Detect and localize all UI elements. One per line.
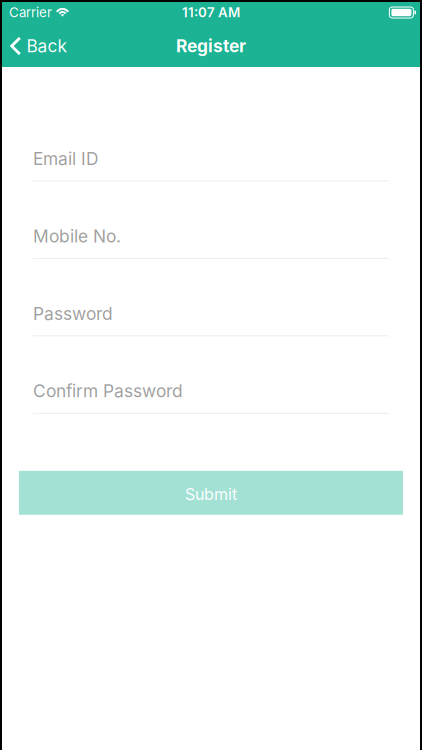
staticText: Email ID — [33, 148, 99, 169]
staticText: Password — [33, 303, 113, 324]
button[interactable]: Submit — [19, 471, 403, 515]
staticText: Submit — [185, 485, 237, 504]
staticText: Carrier — [9, 5, 52, 20]
staticText: Register — [176, 36, 246, 56]
staticText: Confirm Password — [33, 381, 183, 401]
staticText: Mobile No. — [33, 226, 121, 246]
staticText: 11:07 AM — [182, 5, 240, 20]
staticText: Back — [26, 36, 67, 56]
button[interactable]: Back — [0, 25, 79, 67]
